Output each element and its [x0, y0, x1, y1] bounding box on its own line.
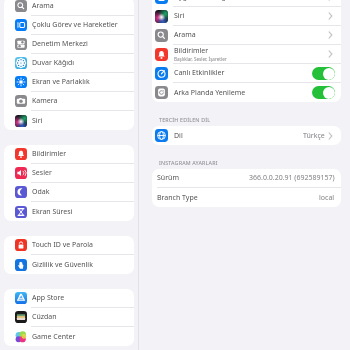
staticText: Cüzdan [32, 312, 57, 322]
staticText: Kamera [32, 96, 58, 106]
staticText: 366.0.0.20.91 (692589157) [249, 173, 335, 183]
staticText: Duvar Kâğıdı [32, 58, 75, 68]
button[interactable]: Ekran Süresi [4, 202, 134, 221]
staticText: Başlıklar, Sesler, İşaretler [174, 56, 227, 62]
button[interactable]: Arama [4, 0, 134, 16]
button[interactable]: Çoklu Görev ve Hareketler [4, 16, 134, 35]
button[interactable]: Ekran ve Parlaklık [4, 73, 134, 92]
staticText: Ekran Süresi [32, 207, 73, 217]
staticText: TERCİH EDİLEN DİL [159, 116, 211, 123]
staticText: Denetim Merkezi [32, 39, 88, 49]
staticText: Sesler [32, 168, 52, 178]
staticText: Uygulama Simgesi [174, 0, 235, 2]
staticText: App Store [32, 293, 65, 303]
button[interactable]: Siri [4, 111, 134, 130]
button[interactable]: Dil [152, 126, 341, 145]
staticText: Game Center [32, 332, 76, 342]
staticText: Gizlilik ve Güvenlik [32, 260, 93, 270]
button[interactable]: Touch ID ve Parola [4, 236, 134, 255]
staticText: Arama [174, 30, 196, 40]
staticText: INSTAGRAM AYARLARI [159, 159, 218, 166]
button[interactable]: Branch Type [152, 188, 341, 207]
button[interactable]: Kamera [4, 92, 134, 111]
button[interactable]: Toggle [312, 86, 335, 99]
staticText: Dil [174, 131, 183, 141]
button[interactable]: Siri [152, 7, 341, 26]
button[interactable]: Duvar Kâğıdı [4, 54, 134, 73]
button[interactable]: Arama [152, 26, 341, 45]
button[interactable]: Sürüm [152, 169, 341, 188]
staticText: Bildirimler [32, 149, 67, 159]
button[interactable]: Odak [4, 183, 134, 202]
button[interactable]: Uygulama Simgesi [152, 0, 341, 7]
staticText: Siri [174, 11, 185, 21]
staticText: Arama [32, 1, 54, 11]
staticText: Canlı Etkinlikler [174, 68, 225, 78]
button[interactable]: App Store [4, 289, 134, 308]
button[interactable]: Bildirimler [4, 145, 134, 164]
staticText: Çoklu Görev ve Hareketler [32, 20, 118, 30]
staticText: Bildirimler [174, 46, 209, 56]
staticText: Sürüm [157, 173, 179, 183]
staticText: Odak [32, 187, 50, 197]
button[interactable]: Game Center [4, 327, 134, 346]
button[interactable]: Denetim Merkezi [4, 35, 134, 54]
button[interactable]: Sesler [4, 164, 134, 183]
button[interactable]: Canlı Etkinlikler [152, 64, 341, 83]
button[interactable]: Bildirimler [152, 45, 341, 64]
staticText: Siri [32, 116, 43, 126]
staticText: Türkçe [303, 131, 325, 141]
staticText: Touch ID ve Parola [32, 240, 93, 250]
staticText: Arka Planda Yenileme [174, 88, 246, 98]
button[interactable]: Toggle [312, 67, 335, 80]
staticText: Ekran ve Parlaklık [32, 77, 90, 87]
button[interactable]: Gizlilik ve Güvenlik [4, 255, 134, 274]
button[interactable]: Cüzdan [4, 308, 134, 327]
staticText: Branch Type [157, 193, 198, 203]
staticText: local [319, 193, 335, 203]
button[interactable]: Arka Planda Yenileme [152, 83, 341, 102]
